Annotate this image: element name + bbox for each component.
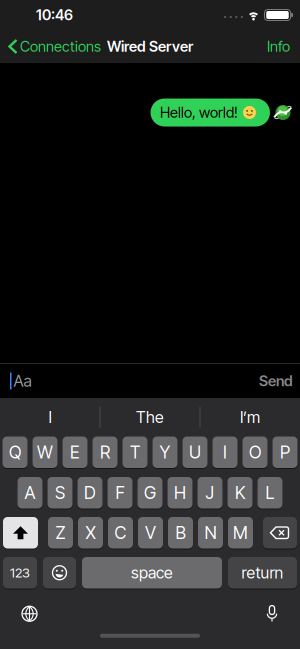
button[interactable]: E: [62, 436, 87, 468]
staticText: F: [115, 482, 124, 503]
button[interactable]: Z: [48, 516, 73, 549]
staticText: X: [85, 522, 95, 543]
button[interactable]: C: [108, 516, 133, 549]
staticText: E: [70, 442, 80, 462]
staticText: space: [131, 563, 173, 582]
button[interactable]: A: [17, 476, 42, 509]
button[interactable]: G: [137, 476, 162, 509]
button[interactable]: Delete: [263, 516, 297, 549]
staticText: 10:46: [36, 6, 73, 24]
staticText: Connections: [20, 38, 101, 55]
button[interactable]: B: [168, 516, 193, 549]
button[interactable]: Emoji: [43, 556, 76, 589]
button[interactable]: return: [228, 556, 297, 589]
staticText: O: [249, 442, 261, 462]
staticText: 123: [10, 565, 30, 581]
button[interactable]: Back: [0, 38, 101, 55]
button[interactable]: X: [78, 516, 103, 549]
staticText: The: [136, 408, 164, 427]
staticText: C: [114, 522, 126, 543]
staticText: J: [205, 482, 214, 503]
button[interactable]: Next keyboard: [0, 606, 37, 621]
staticText: Wired Server: [107, 38, 193, 55]
button[interactable]: J: [197, 476, 222, 509]
staticText: H: [174, 482, 186, 503]
button[interactable]: Q: [2, 436, 27, 468]
staticText: N: [204, 522, 216, 543]
staticText: L: [265, 482, 274, 503]
button[interactable]: R: [92, 436, 117, 468]
button[interactable]: P: [272, 436, 297, 468]
staticText: return: [241, 563, 283, 582]
button[interactable]: S: [47, 476, 72, 509]
button[interactable]: Shift: [3, 516, 38, 549]
button[interactable]: H: [167, 476, 192, 509]
staticText: T: [130, 442, 140, 462]
button[interactable]: Numbers: [3, 556, 37, 589]
staticText: P: [280, 442, 290, 462]
staticText: I’m: [240, 408, 260, 427]
staticText: Send: [259, 372, 293, 390]
button[interactable]: Send: [259, 372, 300, 390]
button[interactable]: Y: [152, 436, 177, 468]
button[interactable]: W: [32, 436, 57, 468]
staticText: I: [48, 408, 51, 427]
staticText: D: [84, 482, 96, 503]
staticText: W: [37, 442, 53, 462]
button[interactable]: F: [107, 476, 132, 509]
button[interactable]: V: [138, 516, 163, 549]
staticText: Q: [9, 442, 21, 462]
staticText: Y: [159, 442, 170, 462]
staticText: Aa: [13, 372, 31, 390]
staticText: R: [100, 442, 110, 462]
button[interactable]: I: [0, 404, 99, 430]
staticText: A: [24, 482, 35, 503]
staticText: Hello, world!: [160, 104, 238, 121]
button[interactable]: Info: [267, 38, 300, 55]
staticText: M: [233, 522, 248, 543]
staticText: S: [55, 482, 65, 503]
staticText: B: [175, 522, 185, 543]
button[interactable]: N: [198, 516, 223, 549]
button[interactable]: D: [77, 476, 102, 509]
staticText: Info: [267, 38, 290, 55]
button[interactable]: space: [82, 556, 222, 589]
staticText: Z: [55, 522, 65, 543]
staticText: I: [223, 442, 227, 462]
button[interactable]: U: [182, 436, 207, 468]
staticText: G: [144, 482, 156, 503]
button[interactable]: I: [212, 436, 237, 468]
button[interactable]: Dictate: [266, 605, 300, 622]
button[interactable]: T: [122, 436, 147, 468]
button[interactable]: I’m: [200, 404, 299, 430]
button[interactable]: The: [100, 404, 199, 430]
button[interactable]: M: [228, 516, 253, 549]
staticText: V: [145, 522, 156, 543]
button[interactable]: L: [257, 476, 282, 509]
button[interactable]: O: [242, 436, 267, 468]
staticText: U: [189, 442, 201, 462]
staticText: K: [235, 482, 245, 503]
button[interactable]: K: [227, 476, 252, 509]
